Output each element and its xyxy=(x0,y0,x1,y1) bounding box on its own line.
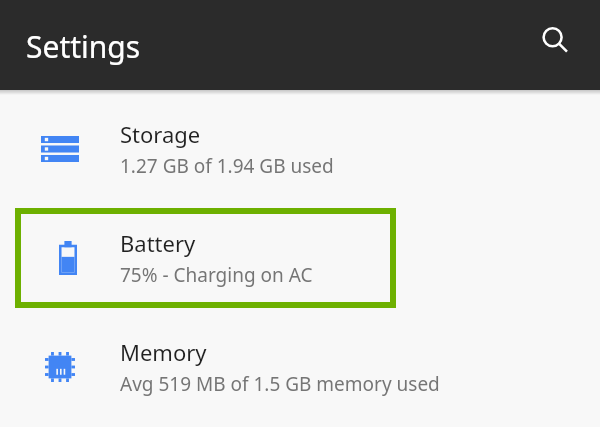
staticText: 1.27 GB of 1.94 GB used xyxy=(120,153,334,179)
button[interactable]: Memory xyxy=(0,326,600,408)
staticText: 75% - Charging on AC xyxy=(120,262,313,288)
button[interactable]: Storage xyxy=(0,108,600,190)
staticText: Settings xyxy=(26,26,141,67)
staticText: Storage xyxy=(120,119,201,149)
staticText: Battery xyxy=(120,228,196,258)
button[interactable]: Search xyxy=(531,16,579,64)
button[interactable]: Battery xyxy=(15,208,396,308)
staticText: Avg 519 MB of 1.5 GB memory used xyxy=(120,371,440,397)
staticText: Memory xyxy=(120,337,207,367)
